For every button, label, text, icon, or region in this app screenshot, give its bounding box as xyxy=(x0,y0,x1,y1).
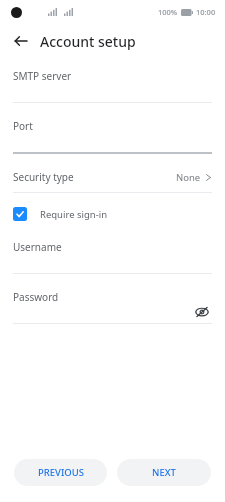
staticText: Account setup xyxy=(40,32,136,51)
button[interactable]: Show password xyxy=(192,302,212,322)
staticText: Require sign-in xyxy=(40,208,108,221)
staticText: Security type xyxy=(13,170,74,184)
staticText: SMTP server xyxy=(13,69,72,83)
staticText: 10:00 xyxy=(196,7,216,17)
staticText: None xyxy=(176,171,201,184)
button[interactable]: NEXT xyxy=(117,459,211,486)
staticText: Username xyxy=(13,240,62,254)
button[interactable]: Back xyxy=(6,26,36,56)
button[interactable]: PREVIOUS xyxy=(14,459,107,486)
staticText: 100% xyxy=(158,7,178,17)
button[interactable]: Security type xyxy=(13,166,212,188)
staticText: Port xyxy=(13,119,33,133)
staticText: NEXT xyxy=(152,466,176,479)
staticText: Password xyxy=(13,290,59,304)
staticText: PREVIOUS xyxy=(38,466,84,479)
button[interactable]: Require sign-in xyxy=(13,203,212,225)
